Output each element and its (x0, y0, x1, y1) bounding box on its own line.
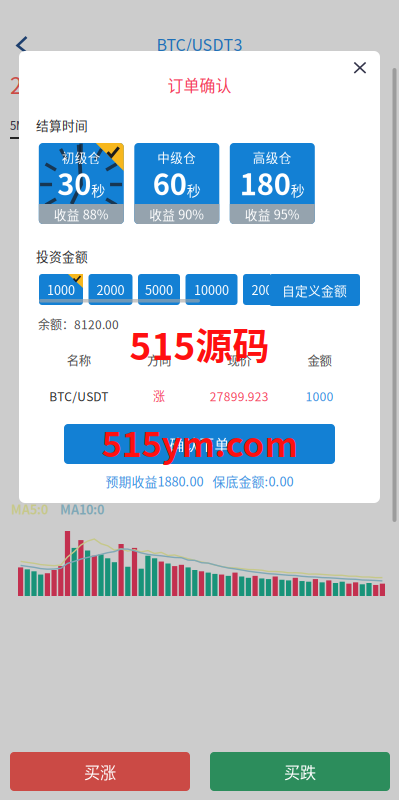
button[interactable]: 中级仓 (134, 143, 219, 224)
staticText: 自定义金额 (282, 281, 347, 299)
staticText: 2000 (96, 280, 124, 299)
button[interactable]: 初级仓 (39, 143, 124, 224)
button[interactable]: 20000 (243, 274, 295, 305)
staticText: 5000 (145, 280, 173, 299)
button[interactable]: 买跌 (210, 752, 390, 791)
button[interactable]: 买涨 (10, 752, 190, 791)
button[interactable]: 5000 (138, 274, 180, 305)
staticText: 高级仓 (253, 148, 292, 166)
staticText: 现价 (227, 351, 251, 369)
button[interactable]: Back (10, 32, 36, 56)
staticText: 结算时间 (36, 116, 88, 134)
staticText: 秒 (91, 180, 105, 200)
staticText: 1000 (305, 387, 333, 405)
staticText: 金额 (307, 351, 331, 369)
staticText: 秒 (187, 180, 201, 200)
staticText: 订单确认 (167, 73, 231, 96)
button[interactable]: 确认下单 (64, 424, 335, 464)
staticText: 初级仓 (62, 148, 101, 166)
staticText: 确认下单 (169, 433, 229, 455)
staticText: 515源码 (129, 317, 269, 371)
staticText: 预期收益1880.00 保底金额:0.00 (105, 472, 293, 490)
staticText: 10000 (194, 280, 229, 299)
staticText: 名称 (67, 351, 91, 369)
staticText: 投资金额 (36, 247, 88, 265)
staticText: MA10:0 (60, 500, 104, 518)
staticText: 515ym.com (101, 417, 297, 467)
staticText: 1000 (47, 280, 75, 299)
staticText: 秒 (291, 180, 305, 200)
staticText: 20000 (251, 280, 286, 299)
staticText: 余额：8120.00 (38, 315, 119, 333)
staticText: MA5:0 (11, 500, 48, 518)
staticText: 买跌 (284, 760, 316, 783)
staticText: 27899.923 (10, 68, 120, 100)
staticText: 方向 (147, 351, 171, 369)
staticText: 收益 90% (149, 205, 204, 223)
staticText: 中级仓 (157, 148, 196, 166)
button[interactable]: Close (345, 53, 375, 83)
staticText: 收益 95% (245, 205, 300, 223)
staticText: 180 (240, 161, 291, 204)
staticText: 60 (153, 161, 187, 204)
button[interactable]: 高级仓 (230, 143, 315, 224)
button[interactable]: 1000 (39, 274, 83, 305)
staticText: 5M (10, 117, 25, 133)
staticText: BTC/USDT (49, 387, 108, 405)
button[interactable]: 10000 (185, 274, 237, 305)
staticText: BTC/USDT3 (156, 32, 242, 56)
staticText: 涨 (153, 387, 165, 405)
button[interactable]: 2000 (88, 274, 132, 305)
staticText: 买涨 (84, 760, 116, 783)
staticText: 30 (57, 161, 91, 204)
staticText: 27899.923 (210, 387, 269, 405)
button[interactable]: 自定义金额 (269, 274, 360, 306)
staticText: 收益 88% (54, 205, 109, 223)
